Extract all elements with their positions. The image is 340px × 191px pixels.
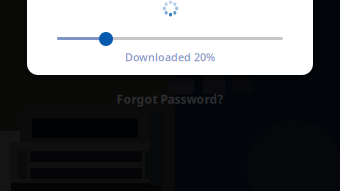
staticText: Downloaded 20% — [125, 50, 215, 64]
button[interactable]: Forgot Password? — [70, 92, 270, 106]
staticText: Forgot Password? — [116, 91, 223, 107]
